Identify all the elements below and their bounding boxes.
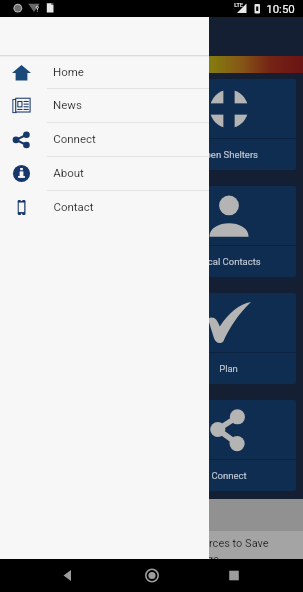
staticText: Resources to Save bbox=[178, 537, 269, 550]
staticText: Plan bbox=[219, 363, 238, 374]
button[interactable]: Recent apps bbox=[217, 559, 251, 592]
button[interactable]: Contact bbox=[0, 191, 209, 224]
staticText: Damage bbox=[178, 553, 219, 566]
button[interactable]: Back bbox=[52, 559, 86, 592]
staticText: Open Shelters bbox=[45, 149, 104, 160]
staticText: Contact bbox=[53, 200, 94, 213]
staticText: Connect bbox=[53, 132, 96, 145]
button[interactable]: Plan bbox=[161, 293, 296, 384]
button[interactable]: About bbox=[0, 157, 209, 190]
staticText: About bbox=[53, 166, 84, 179]
button[interactable]: Home bbox=[135, 559, 169, 592]
button[interactable]: Connect bbox=[0, 123, 209, 156]
staticText: LTE bbox=[234, 2, 243, 8]
button[interactable]: Connect bbox=[161, 400, 296, 491]
staticText: News bbox=[53, 98, 82, 111]
staticText: 10:50 bbox=[266, 2, 295, 15]
staticText: Connect bbox=[211, 470, 247, 481]
button[interactable]: Local Contacts bbox=[7, 186, 142, 277]
button[interactable]: News bbox=[0, 89, 209, 122]
staticText: Local Contacts bbox=[197, 256, 261, 267]
button[interactable]: Open Shelters bbox=[161, 79, 296, 170]
button[interactable]: Open Shelters bbox=[7, 79, 142, 170]
staticText: Open Shelters bbox=[199, 149, 258, 160]
button[interactable]: Local Contacts bbox=[161, 186, 296, 277]
button[interactable]: Home bbox=[0, 57, 209, 88]
staticText: Home bbox=[53, 65, 84, 78]
